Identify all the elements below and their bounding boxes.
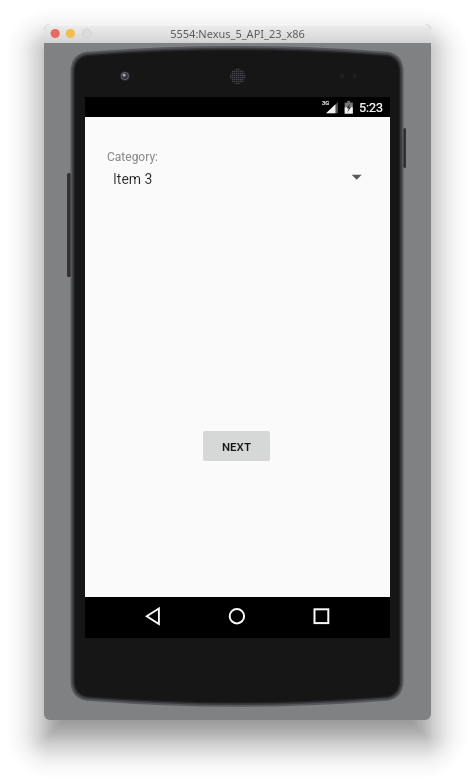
staticText: 5:23 — [359, 100, 384, 115]
button[interactable]: Back — [138, 599, 168, 635]
staticText: NEXT — [222, 440, 252, 453]
button[interactable]: Home — [222, 599, 252, 635]
staticText: Category: — [107, 150, 158, 164]
staticText: 5554:Nexus_5_API_23_x86 — [44, 26, 431, 43]
staticText: 3G — [322, 100, 330, 107]
button[interactable]: Item 3 — [107, 169, 363, 189]
button[interactable]: NEXT — [203, 431, 270, 461]
staticText: Item 3 — [113, 171, 153, 187]
button[interactable]: Recent apps — [307, 599, 337, 635]
